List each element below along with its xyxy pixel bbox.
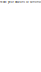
staticText: Create your account to continue bbox=[0, 0, 41, 4]
